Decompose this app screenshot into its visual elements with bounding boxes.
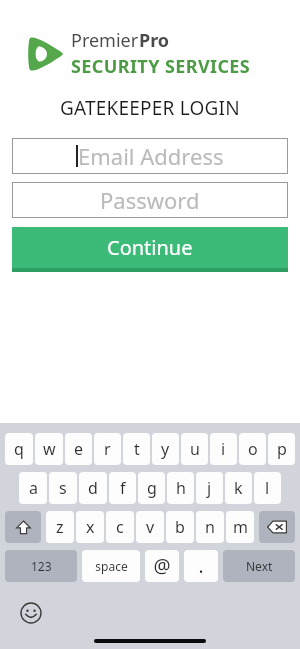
staticText: r [104,438,111,460]
staticText: Pro [139,28,170,53]
staticText: w [43,438,56,460]
staticText: x [86,516,95,538]
button[interactable]: c [106,511,134,543]
button[interactable]: l [254,472,281,504]
staticText: Premier [71,28,139,53]
button[interactable]: u [181,433,208,465]
button[interactable]: space [82,550,140,582]
button[interactable]: t [123,433,150,465]
button[interactable]: Next [223,550,295,582]
staticText: p [277,438,287,460]
staticText: . [198,553,204,579]
staticText: i [221,438,226,460]
staticText: m [233,516,248,538]
button[interactable]: @ [145,550,179,582]
staticText: @ [153,553,171,579]
staticText: Email Address [78,141,224,171]
button[interactable]: Emoji [20,602,42,624]
button[interactable]: f [109,472,136,504]
button[interactable]: n [196,511,224,543]
button[interactable]: b [166,511,194,543]
staticText: k [234,477,243,499]
staticText: space [95,558,128,574]
staticText: a [29,477,38,499]
button[interactable]: a [19,472,47,504]
staticText: j [207,477,212,499]
staticText: d [88,477,98,499]
button[interactable]: i [210,433,237,465]
other: PremierPro logo [27,35,63,73]
button[interactable]: x [76,511,104,543]
staticText: u [190,438,200,460]
button[interactable]: v [136,511,164,543]
button[interactable]: k [225,472,252,504]
button[interactable]: Continue [12,227,288,272]
staticText: t [134,438,140,460]
button[interactable]: s [49,472,77,504]
staticText: y [161,438,170,460]
button[interactable]: o [239,433,266,465]
button[interactable]: Email Address [12,138,288,174]
button[interactable]: h [167,472,194,504]
button[interactable]: g [138,472,165,504]
button[interactable]: w [35,433,63,465]
staticText: f [120,477,126,499]
button[interactable]: e [65,433,92,465]
button[interactable]: Password [12,182,288,218]
staticText: 123 [31,558,52,574]
button[interactable]: . [184,550,218,582]
staticText: Next [246,558,273,574]
button[interactable]: j [196,472,223,504]
staticText: GATEKEEPER LOGIN [60,95,240,121]
button[interactable]: Backspace [259,511,295,543]
staticText: SECURITY SERVICES [71,54,251,79]
staticText: h [176,477,186,499]
button[interactable]: Shift [5,511,41,543]
staticText: c [116,516,124,538]
button[interactable]: r [94,433,121,465]
staticText: n [205,516,215,538]
button[interactable]: d [79,472,107,504]
staticText: q [14,438,24,460]
button[interactable]: q [5,433,33,465]
button[interactable]: y [152,433,179,465]
button[interactable]: p [268,433,295,465]
staticText: l [265,477,270,499]
staticText: v [146,516,155,538]
button[interactable]: 123 [5,550,77,582]
staticText: o [248,438,258,460]
staticText: g [147,477,157,499]
staticText: Continue [107,234,193,261]
staticText: e [74,438,84,460]
button[interactable]: z [46,511,74,543]
staticText: s [59,477,67,499]
staticText: z [56,516,64,538]
button[interactable]: m [226,511,254,543]
staticText: Password [100,185,200,215]
staticText: b [175,516,185,538]
